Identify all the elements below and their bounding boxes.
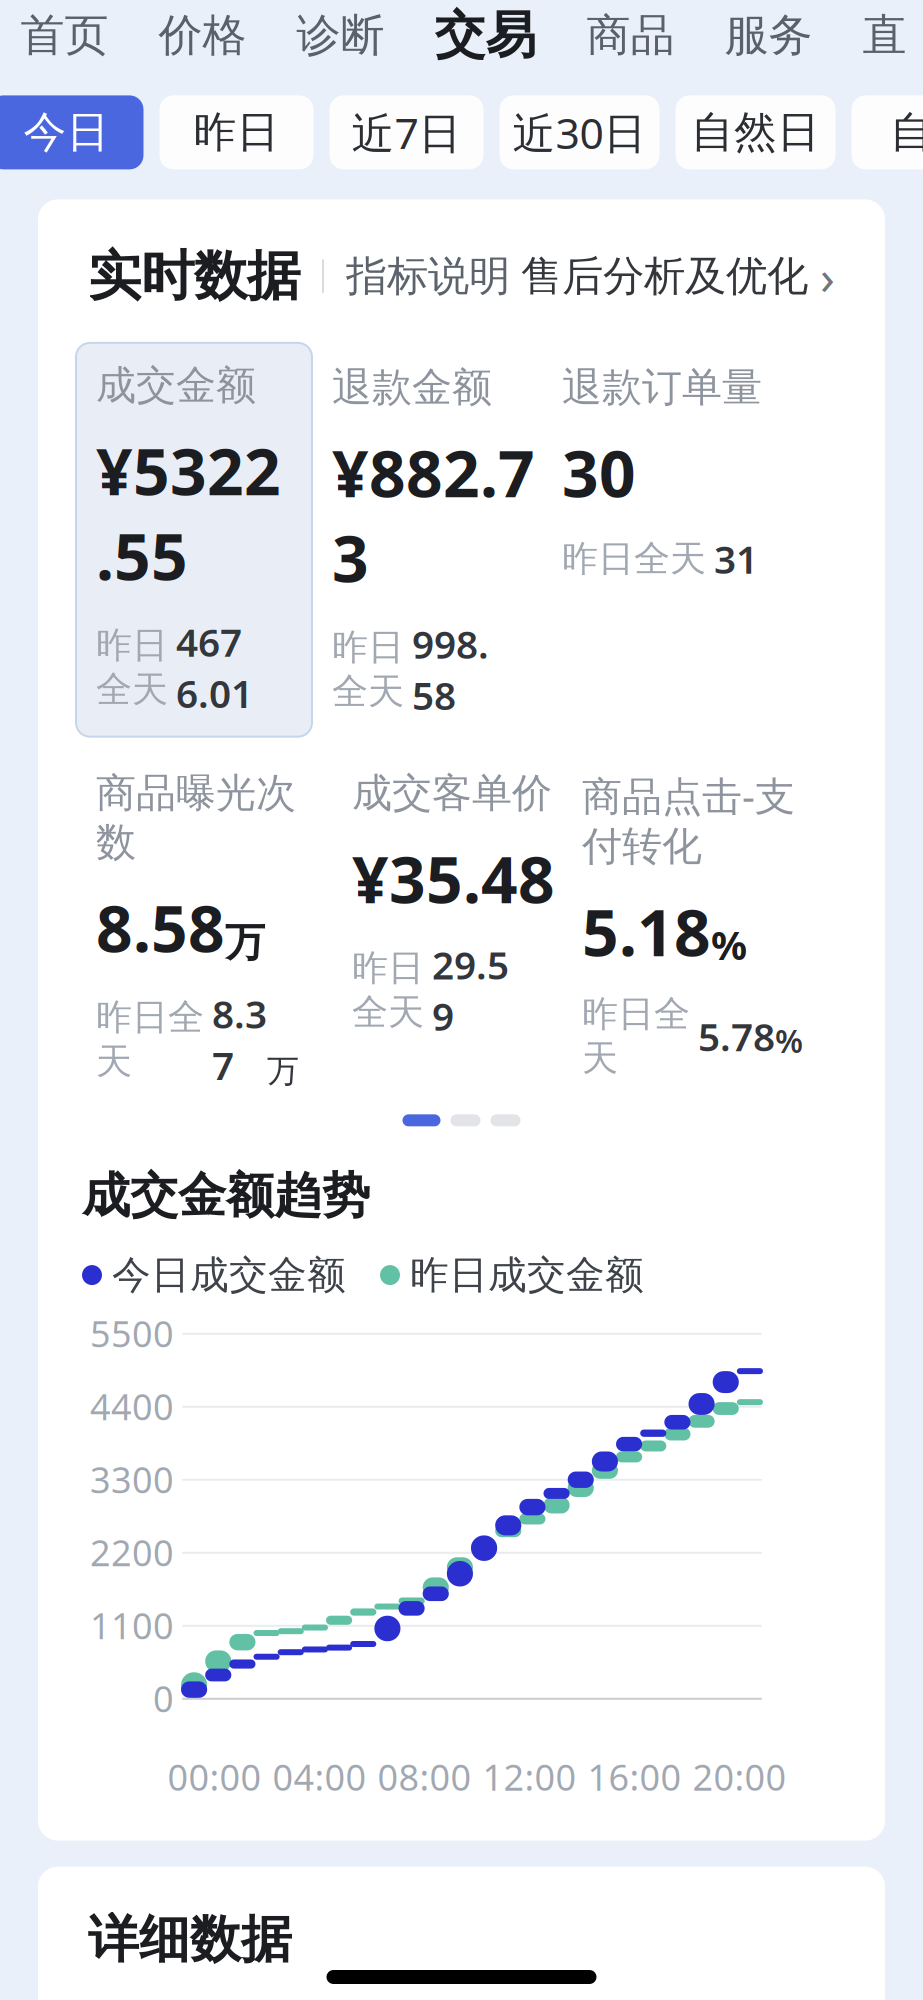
staticText: 昨日全天 [332, 625, 404, 713]
staticText: 详细数据 [88, 1909, 292, 1971]
staticText: 交易 [434, 4, 536, 66]
staticText: 实时数据 [88, 243, 300, 309]
button[interactable]: 退款订单量 [562, 363, 792, 584]
button[interactable]: 指标说明 [346, 251, 510, 301]
staticText: 诊断 [296, 8, 384, 62]
button[interactable]: 近30日 [499, 95, 659, 169]
button[interactable]: 近7日 [329, 95, 483, 169]
staticText: 售后分析及优化 [521, 251, 808, 301]
button[interactable]: 退款金额 [332, 363, 546, 721]
staticText: 自 [890, 106, 923, 159]
staticText: 万 [225, 918, 265, 967]
button[interactable]: 价格 [144, 0, 260, 71]
staticText: 8.37 [212, 988, 267, 1091]
staticText: 昨日全天 [96, 995, 204, 1083]
staticText: 0 [153, 1674, 174, 1722]
staticText: 3300 [90, 1455, 174, 1503]
staticText: 成交金额 [96, 361, 256, 410]
staticText: 直 [862, 8, 906, 62]
staticText: 昨日 [193, 106, 279, 159]
staticText: 退款订单量 [562, 363, 762, 412]
staticText: 商品 [586, 8, 674, 62]
staticText: 自然日 [691, 106, 820, 159]
button[interactable]: 诊断 [282, 0, 398, 71]
staticText: 29.59 [432, 939, 509, 1041]
staticText: 昨日成交金额 [410, 1251, 644, 1299]
staticText: ¥35.48 [352, 836, 555, 921]
button[interactable]: 售后分析及优化 [521, 244, 835, 308]
button[interactable]: 成交金额 [76, 343, 312, 737]
staticText: 首页 [20, 8, 108, 62]
button[interactable]: 商品曝光次数 [96, 769, 332, 1076]
button[interactable]: 自 [851, 95, 923, 169]
staticText: 4400 [90, 1382, 174, 1430]
button[interactable]: 昨日 [159, 95, 313, 169]
staticText: 指标说明 [346, 251, 510, 301]
staticText: 5500 [90, 1309, 174, 1357]
staticText: 价格 [158, 8, 246, 62]
button[interactable]: 首页 [6, 0, 122, 71]
button[interactable]: 服务 [710, 0, 826, 71]
staticText: 昨日全天 [582, 992, 690, 1080]
staticText: % [711, 918, 747, 971]
staticText: 20:00 [692, 1753, 786, 1801]
staticText: 商品曝光次数 [96, 769, 296, 867]
staticText: 08:00 [377, 1753, 471, 1801]
staticText: 30 [562, 430, 636, 515]
staticText: 16:00 [587, 1753, 681, 1801]
staticText: 5.18 [582, 889, 711, 974]
staticText: 成交金额趋势 [82, 1166, 370, 1225]
staticText: 近30日 [512, 104, 646, 161]
button[interactable]: 直 [848, 0, 920, 71]
button[interactable]: 成交客单价 [352, 769, 566, 1027]
staticText: 31 [714, 533, 758, 584]
staticText: 昨日全天 [352, 946, 424, 1034]
staticText: 昨日全天 [96, 623, 168, 711]
button[interactable]: 今日 [0, 95, 143, 169]
staticText: 8.58 [96, 885, 225, 970]
staticText: ¥882.73 [332, 430, 535, 600]
staticText: ¥5322.55 [96, 428, 281, 598]
staticText: 万 [267, 1051, 299, 1091]
staticText: % [775, 1019, 803, 1062]
staticText: 昨日全天 [562, 537, 706, 581]
staticText: 退款金额 [332, 363, 492, 412]
staticText: 04:00 [272, 1753, 366, 1801]
staticText: 5.78 [698, 1010, 775, 1062]
staticText: 商品点击-支付转化 [582, 769, 795, 871]
staticText: 近7日 [351, 104, 461, 161]
staticText: 998.58 [412, 618, 489, 721]
staticText: 今日成交金额 [112, 1251, 346, 1299]
staticText: 1100 [90, 1601, 174, 1649]
staticText: 今日 [23, 106, 109, 159]
staticText: 00:00 [167, 1753, 261, 1801]
staticText: 2200 [90, 1528, 174, 1576]
staticText: 4676.01 [176, 616, 253, 719]
button[interactable]: 商品点击-支付转化 [582, 769, 822, 1080]
button[interactable]: 自然日 [675, 95, 835, 169]
staticText: 成交客单价 [352, 769, 552, 818]
button[interactable]: 商品 [572, 0, 688, 71]
staticText: 服务 [724, 8, 812, 62]
staticText: 12:00 [482, 1753, 576, 1801]
button[interactable]: 交易 [420, 0, 550, 71]
staticText: › [820, 244, 835, 308]
